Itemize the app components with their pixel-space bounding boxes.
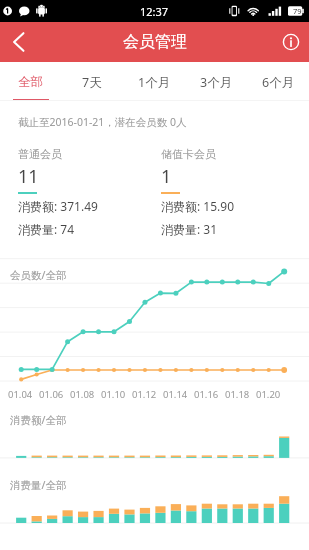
button[interactable]: 6个月 bbox=[247, 62, 309, 101]
staticText: 消费额/全部 bbox=[10, 413, 67, 427]
staticText: 3个月 bbox=[200, 74, 233, 91]
staticText: 01.20 bbox=[256, 388, 281, 401]
staticText: 01.10 bbox=[101, 388, 126, 401]
staticText: 6个月 bbox=[262, 74, 295, 91]
staticText: 7天 bbox=[82, 74, 102, 91]
button[interactable]: 1个月 bbox=[123, 62, 185, 101]
button[interactable]: 3个月 bbox=[185, 62, 247, 101]
staticText: 储值卡会员 bbox=[161, 147, 216, 161]
staticText: 01.08 bbox=[70, 388, 95, 401]
staticText: 截止至2016-01-21，潜在会员数 0人 bbox=[18, 115, 187, 129]
staticText: 01.16 bbox=[194, 388, 219, 401]
staticText: 12:37 bbox=[140, 4, 169, 19]
staticText: 1 bbox=[161, 164, 172, 189]
staticText: 消费额: 371.49 bbox=[18, 198, 98, 214]
staticText: 消费量/全部 bbox=[10, 478, 67, 492]
staticText: 消费量: 31 bbox=[161, 221, 218, 237]
staticText: 消费量: 74 bbox=[18, 221, 75, 237]
staticText: 会员数/全部 bbox=[10, 268, 67, 282]
staticText: 全部 bbox=[18, 74, 43, 90]
button[interactable]: 全部 bbox=[0, 62, 61, 101]
button[interactable]: Back bbox=[0, 22, 38, 62]
staticText: 01.12 bbox=[132, 388, 157, 401]
button[interactable]: 7天 bbox=[61, 62, 123, 101]
staticText: 普通会员 bbox=[18, 147, 62, 161]
button[interactable]: Info bbox=[273, 22, 309, 62]
staticText: 01.18 bbox=[225, 388, 250, 401]
staticText: 79 bbox=[293, 6, 302, 16]
staticText: 01.04 bbox=[8, 388, 33, 401]
staticText: 1个月 bbox=[138, 74, 171, 91]
staticText: 消费额: 15.90 bbox=[161, 198, 235, 214]
staticText: 01.14 bbox=[163, 388, 188, 401]
staticText: 会员管理 bbox=[123, 32, 187, 52]
staticText: 01.06 bbox=[39, 388, 64, 401]
staticText: 11 bbox=[18, 164, 39, 189]
